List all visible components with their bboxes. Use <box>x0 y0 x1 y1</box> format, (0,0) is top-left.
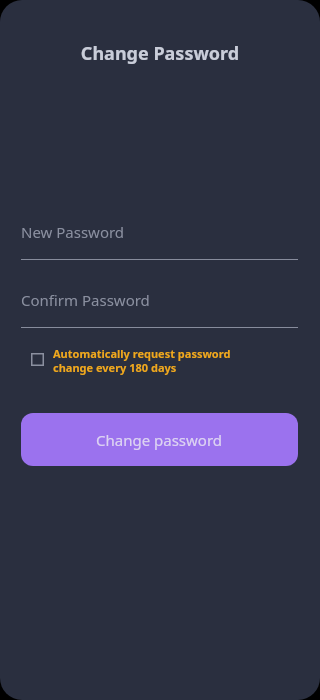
button[interactable]: Automatically request password change ev… <box>21 346 298 375</box>
button[interactable]: New Password <box>21 222 298 260</box>
staticText: Automatically request password change ev… <box>53 346 231 375</box>
staticText: New Password <box>21 222 125 242</box>
staticText: Change password <box>96 430 223 450</box>
button[interactable]: Change password <box>21 413 298 466</box>
staticText: Confirm Password <box>21 290 150 310</box>
staticText: Change Password <box>0 41 320 66</box>
button[interactable]: Confirm Password <box>21 290 298 328</box>
